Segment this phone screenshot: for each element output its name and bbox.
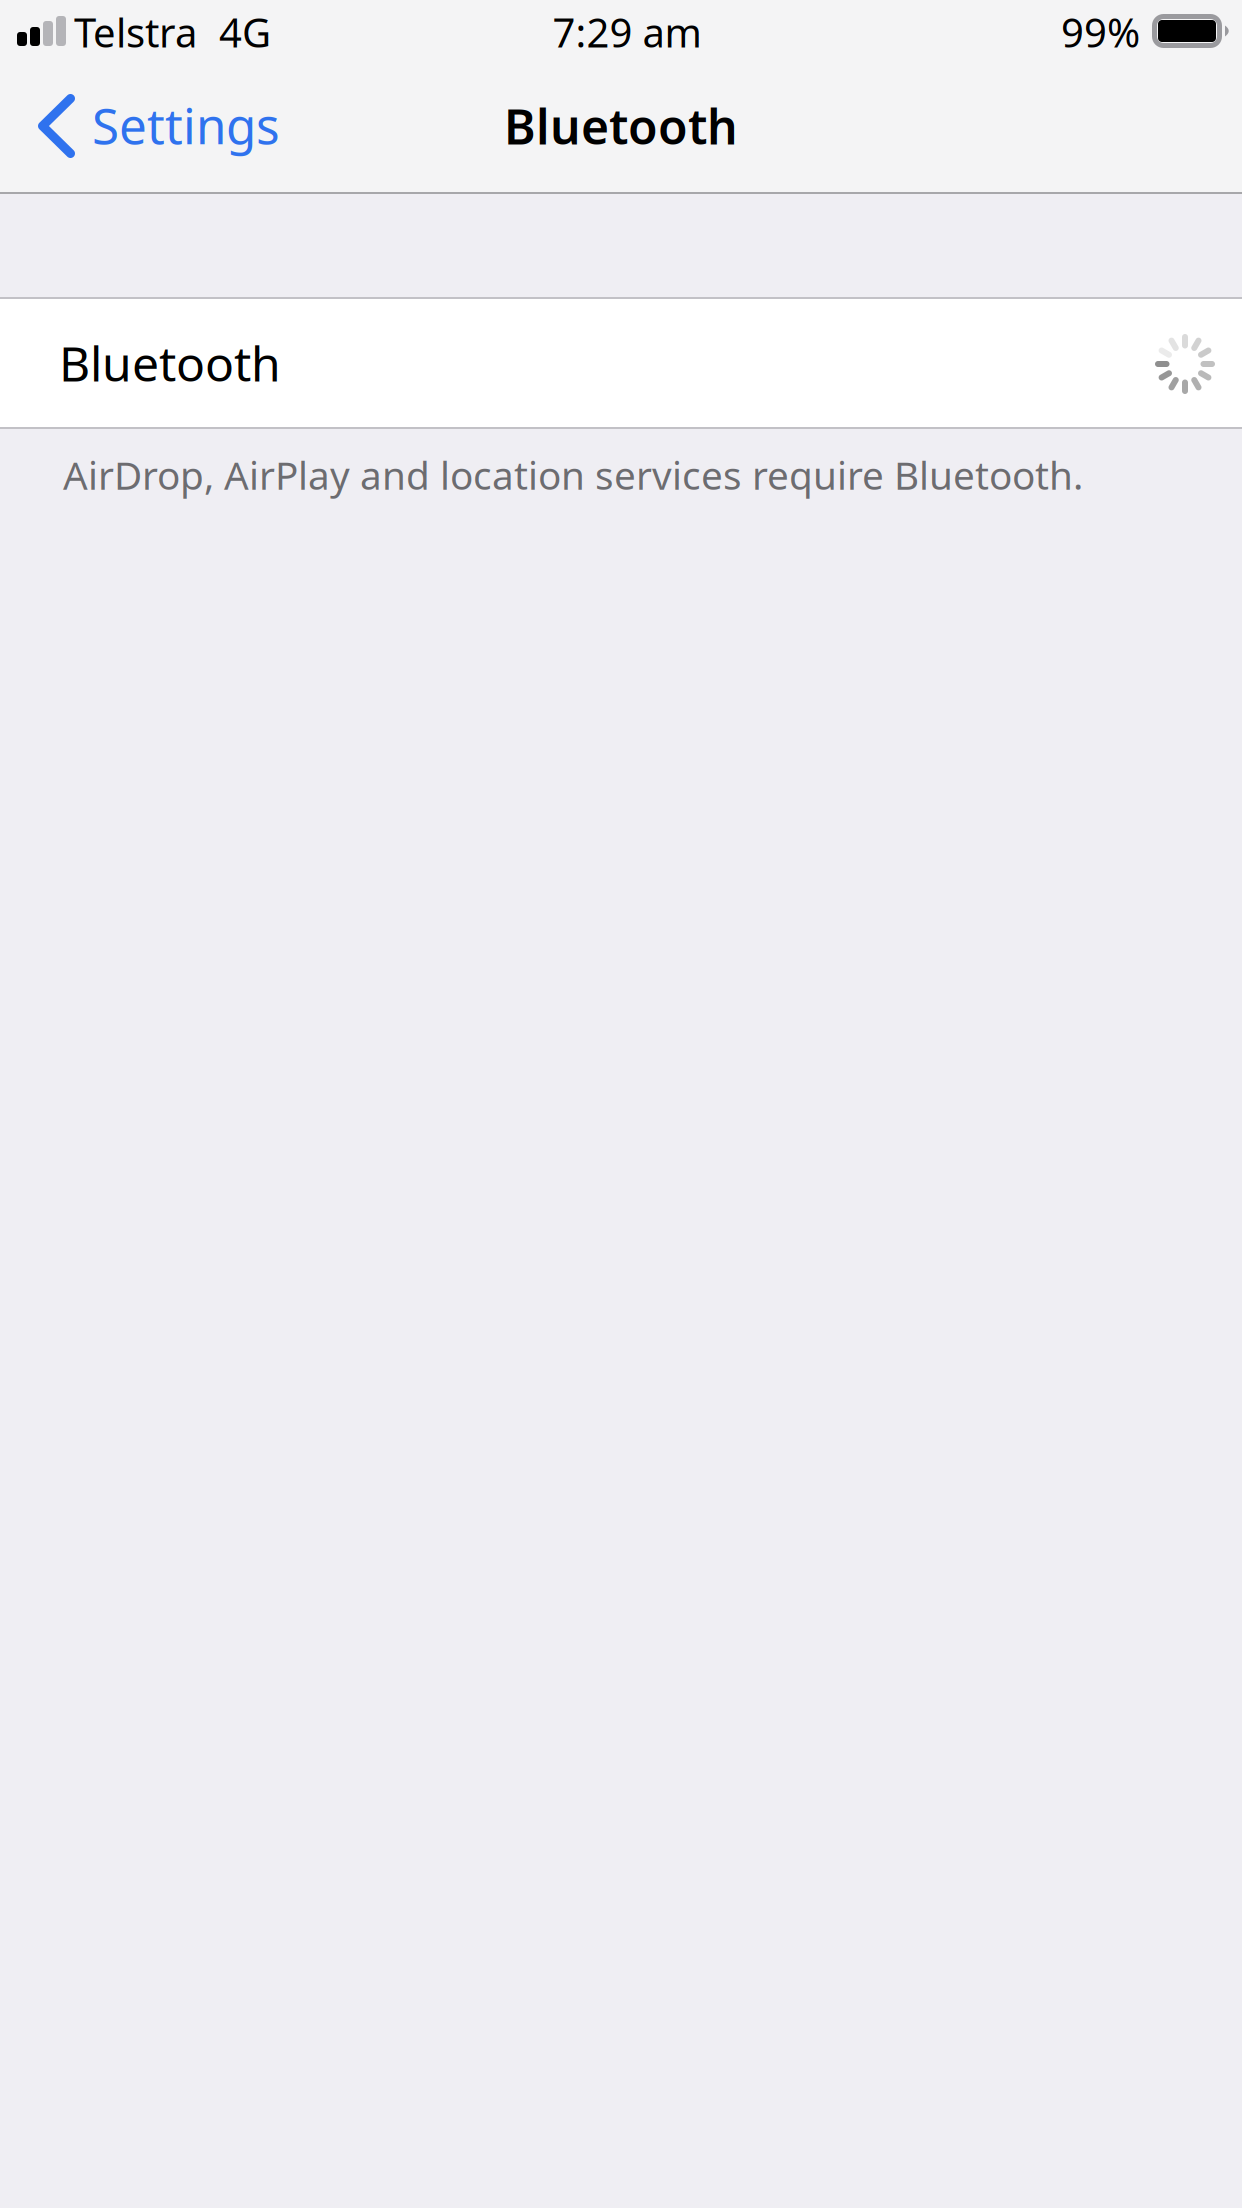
staticText: 99% [1061, 5, 1140, 58]
button[interactable]: Back to Settings [0, 65, 306, 187]
button[interactable]: Bluetooth [0, 297, 1242, 429]
staticText: 4G [219, 5, 271, 58]
staticText: 7:29 am [552, 5, 701, 58]
staticText: Telstra [74, 5, 197, 58]
staticText: Settings [92, 92, 280, 158]
staticText: AirDrop, AirPlay and location services r… [63, 449, 1083, 500]
staticText: Bluetooth [59, 331, 281, 395]
staticText: Bluetooth [504, 94, 738, 158]
